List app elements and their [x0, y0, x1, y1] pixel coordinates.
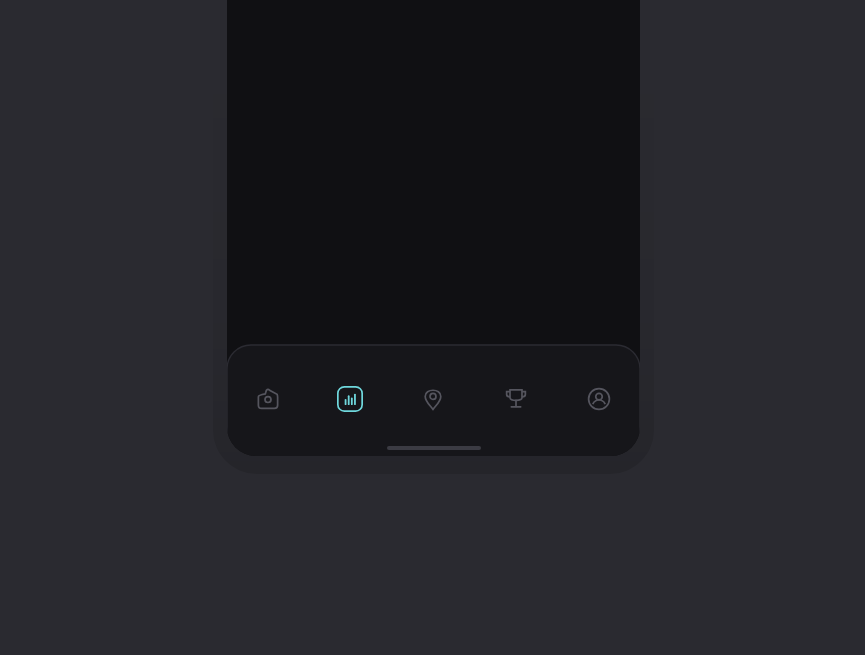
- button[interactable]: Home: [227, 376, 309, 422]
- button[interactable]: Profile: [557, 376, 640, 422]
- button[interactable]: Places: [391, 376, 474, 422]
- button[interactable]: Achievements: [474, 376, 557, 422]
- button[interactable]: Statistics: [309, 376, 391, 422]
